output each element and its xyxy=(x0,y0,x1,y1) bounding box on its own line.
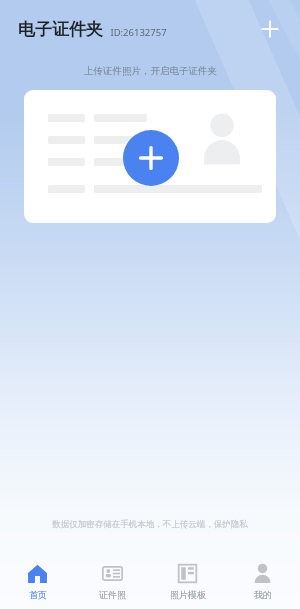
staticText: ID:26132757 xyxy=(110,26,167,39)
staticText: 证件照 xyxy=(99,589,126,600)
button[interactable]: 照片模板 xyxy=(150,557,225,609)
button[interactable]: Add ID photo xyxy=(24,90,276,223)
button[interactable]: Add ID photo xyxy=(123,130,179,186)
staticText: 电子证件夹 xyxy=(18,19,103,40)
button[interactable]: Add xyxy=(252,11,288,47)
staticText: 数据仅加密存储在手机本地，不上传云端，保护隐私 xyxy=(52,519,248,530)
button[interactable]: 我的 xyxy=(225,557,300,609)
staticText: 首页 xyxy=(29,589,47,600)
staticText: 上传证件照片，开启电子证件夹 xyxy=(84,65,217,77)
button[interactable]: 证件照 xyxy=(75,557,150,609)
staticText: 照片模板 xyxy=(170,589,206,600)
button[interactable]: 首页 xyxy=(0,557,75,609)
staticText: 我的 xyxy=(254,589,272,600)
